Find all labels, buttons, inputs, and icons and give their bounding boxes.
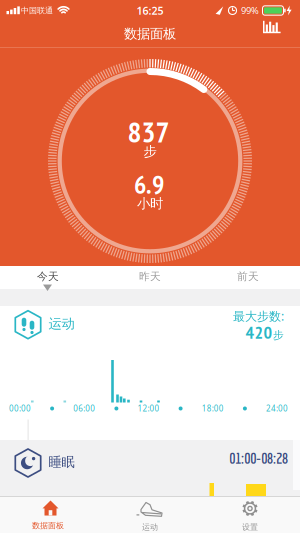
button[interactable]: 数据面板 bbox=[0, 496, 100, 533]
button[interactable]: 前天 bbox=[198, 265, 298, 288]
staticText: 01:00-08:28 bbox=[229, 449, 288, 467]
staticText: 步 bbox=[273, 328, 284, 342]
staticText: 16:25 bbox=[136, 3, 163, 18]
staticText: 837 bbox=[127, 112, 169, 150]
staticText: 数据面板 bbox=[124, 26, 176, 42]
button[interactable]: 统计图表 bbox=[262, 20, 292, 46]
button[interactable]: 今天 bbox=[0, 265, 98, 288]
button[interactable]: 设置 bbox=[200, 496, 300, 533]
staticText: 最大步数: bbox=[233, 308, 284, 324]
staticText: 小时 bbox=[137, 195, 163, 212]
staticText: 06:00 bbox=[73, 403, 95, 414]
button[interactable]: 睡眠 bbox=[0, 441, 300, 485]
staticText: 6.9 bbox=[134, 167, 164, 201]
staticText: 睡眠 bbox=[48, 454, 74, 470]
staticText: 99% bbox=[241, 4, 259, 17]
staticText: 昨天 bbox=[139, 270, 161, 283]
staticText: 设置 bbox=[242, 522, 258, 532]
staticText: 运动 bbox=[142, 522, 158, 532]
staticText: 步 bbox=[143, 143, 156, 160]
staticText: 运动 bbox=[48, 316, 74, 332]
staticText: 前天 bbox=[237, 270, 259, 283]
staticText: 18:00 bbox=[202, 403, 224, 414]
staticText: 今天 bbox=[37, 270, 59, 283]
staticText: 数据面板 bbox=[32, 521, 64, 530]
staticText: 24:00 bbox=[266, 403, 288, 414]
button[interactable]: 运动 bbox=[0, 302, 300, 346]
staticText: 420 bbox=[245, 320, 272, 344]
staticText: 12:00 bbox=[137, 403, 159, 414]
button[interactable]: 昨天 bbox=[100, 265, 200, 288]
staticText: 中国联通 bbox=[21, 6, 53, 15]
staticText: 00:00 bbox=[9, 403, 31, 414]
button[interactable]: 运动 bbox=[100, 496, 200, 533]
